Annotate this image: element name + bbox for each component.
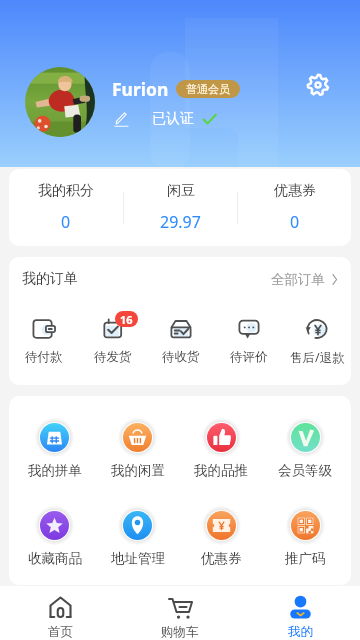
button[interactable]: 我的订单 (9, 257, 351, 301)
button[interactable]: 待评价 (215, 301, 283, 385)
button[interactable]: 推广码 (263, 506, 347, 567)
staticText: 已认证 (152, 110, 194, 128)
button[interactable]: Avatar (25, 67, 95, 137)
staticText: Furion (112, 77, 169, 101)
staticText: 待评价 (230, 349, 268, 365)
staticText: 我的积分 (38, 182, 94, 200)
button[interactable]: 地址管理 (96, 506, 179, 567)
staticText: 优惠券 (201, 550, 242, 567)
staticText: 我的订单 (22, 270, 78, 288)
staticText: 推广码 (285, 550, 326, 567)
staticText: 地址管理 (111, 550, 165, 567)
staticText: 我的品推 (194, 462, 248, 479)
button[interactable]: 我的 (240, 586, 360, 640)
staticText: 全部订单 (271, 271, 325, 288)
staticText: 0 (61, 211, 71, 233)
button[interactable]: 我的拼单 (13, 418, 96, 479)
button[interactable]: 待收货 (147, 301, 215, 385)
staticText: 普通会员 (186, 82, 230, 96)
button[interactable]: 闲豆 (124, 169, 237, 246)
staticText: 闲豆 (167, 182, 195, 200)
button[interactable]: 售后/退款 (283, 301, 351, 385)
button[interactable]: 收藏商品 (13, 506, 96, 567)
staticText: 售后/退款 (290, 349, 345, 366)
button[interactable]: Settings (307, 74, 329, 96)
staticText: 优惠券 (274, 182, 316, 200)
staticText: 16 (120, 312, 133, 327)
button[interactable]: 我的品推 (179, 418, 263, 479)
button[interactable]: 我的积分 (9, 169, 123, 246)
staticText: 待付款 (25, 349, 63, 365)
button[interactable]: 会员等级 (263, 418, 347, 479)
staticText: 我的 (288, 624, 313, 640)
button[interactable]: 优惠券 (238, 169, 351, 246)
button[interactable]: 首页 (0, 586, 120, 640)
button[interactable]: 我的闲置 (96, 418, 179, 479)
staticText: 购物车 (161, 624, 199, 640)
button[interactable]: 普通会员 (176, 80, 240, 98)
button[interactable]: 优惠券 (179, 506, 263, 567)
button[interactable]: 待付款 (9, 301, 78, 385)
staticText: 我的闲置 (111, 462, 165, 479)
staticText: 29.97 (160, 211, 201, 233)
staticText: 首页 (48, 624, 73, 640)
staticText: 0 (290, 211, 300, 233)
staticText: 待发货 (94, 349, 132, 365)
button[interactable]: Edit profile (114, 112, 129, 127)
staticText: 收藏商品 (28, 550, 82, 567)
staticText: 我的拼单 (28, 462, 82, 479)
button[interactable]: 购物车 (120, 586, 240, 640)
staticText: 会员等级 (278, 462, 332, 479)
button[interactable]: 16 (78, 301, 147, 385)
staticText: 待收货 (162, 349, 200, 365)
button[interactable]: 已认证 (152, 110, 217, 128)
